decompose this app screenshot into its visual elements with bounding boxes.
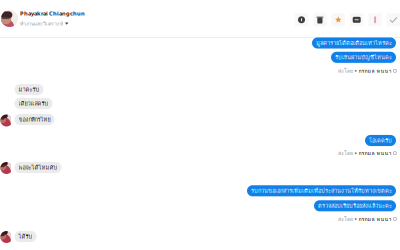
button[interactable]: ส่งโดย [0,149,396,157]
button[interactable]: Star [329,11,347,29]
button[interactable]: Done [384,11,400,29]
button[interactable]: พอจะได้ไหมคับ [14,162,400,173]
button[interactable]: ส่งโดย [0,215,396,223]
staticText: ส่งโดย [338,149,353,157]
button[interactable]: ได้รับ [14,231,400,242]
staticText: ได้รับ [18,232,32,241]
staticText: รับเงินผ่านบัญชีไหนคะ [335,53,392,62]
staticText: ทำงานและวิเคราะห์ [20,20,63,28]
staticText: โอเคครับ [369,136,392,145]
button[interactable]: ตรวจสอบเรียบร้อยส่งแล้วนะคะ [0,200,396,211]
button[interactable]: Delete [311,11,329,29]
button[interactable]: รบกวนขอเอกสารเพิ่มเติมเพื่อประสานงานให้ก… [0,185,396,196]
staticText: มาคะรับ [18,85,39,94]
button[interactable]: รับเงินผ่านบัญชีไหนคะ [0,52,396,63]
button[interactable]: เดียวแสครับ [14,98,400,109]
staticText: เดียวแสครับ [18,99,48,108]
staticText: กรกมล หนนา [358,67,391,75]
staticText: มูลค่ารายได้ต่อเดือนเท่าไหร่คะ [316,38,392,47]
staticText: พอจะได้ไหมคับ [18,163,57,172]
staticText: ตรวจสอบเรียบร้อยส่งแล้วนะคะ [318,201,392,210]
staticText: กรกมล หนนา [358,149,391,157]
button[interactable]: ของกสิกรไทย [14,114,400,125]
staticText: Phayakrai Chiangchun [20,9,85,17]
button[interactable]: Report [366,11,384,29]
button[interactable]: มาคะรับ [14,84,400,95]
button[interactable]: มูลค่ารายได้ต่อเดือนเท่าไหร่คะ [0,37,396,48]
button[interactable]: Archive [347,11,366,29]
staticText: ส่งโดย [338,67,353,75]
staticText: ส่งโดย [338,215,353,223]
button[interactable]: Info [292,11,311,29]
staticText: รบกวนขอเอกสารเพิ่มเติมเพื่อประสานงานให้ก… [251,186,392,195]
button[interactable]: ส่งโดย [0,67,396,75]
staticText: ของกสิกรไทย [18,115,50,124]
button[interactable]: โอเคครับ [0,135,396,146]
staticText: กรกมล หนนา [358,215,391,223]
